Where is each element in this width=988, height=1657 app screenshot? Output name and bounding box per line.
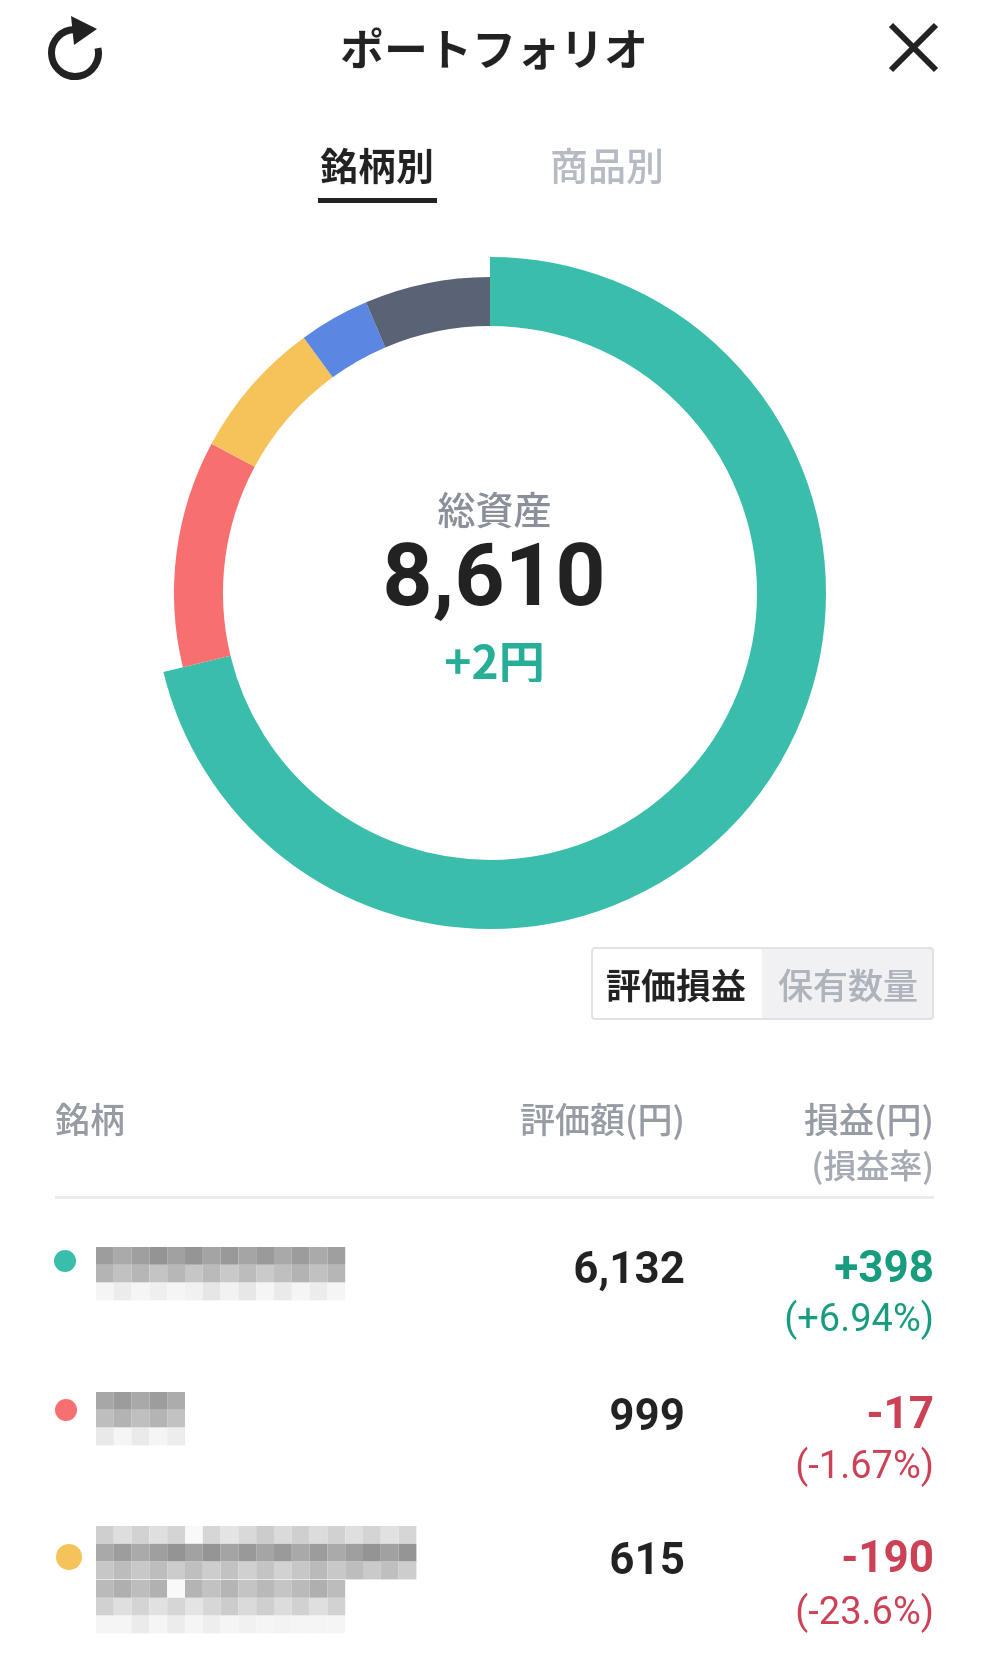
staticText: -190 <box>841 1531 934 1581</box>
staticText: ポートフォリオ <box>340 15 648 79</box>
button[interactable] <box>0 1220 988 1350</box>
staticText: 銘柄 <box>55 1092 126 1142</box>
staticText: (損益率) <box>811 1140 934 1188</box>
staticText: 総資産 <box>437 480 552 532</box>
staticText: (-1.67%) <box>795 1443 934 1487</box>
staticText: 8,610 <box>382 523 606 623</box>
button[interactable] <box>876 12 950 84</box>
staticText: 6,132 <box>573 1242 685 1292</box>
button[interactable]: 商品別 <box>530 122 685 206</box>
staticText: 銘柄別 <box>320 136 435 191</box>
staticText: 評価損益 <box>606 958 747 1009</box>
button[interactable]: 保有数量 <box>762 947 934 1020</box>
staticText: 保有数量 <box>778 958 919 1009</box>
staticText: (+6.94%) <box>784 1296 934 1340</box>
button[interactable]: 銘柄別 <box>300 122 455 206</box>
staticText: 商品別 <box>550 136 665 191</box>
staticText: 999 <box>609 1389 685 1439</box>
staticText: 評価額(円) <box>520 1092 685 1142</box>
staticText: 損益(円) <box>804 1092 934 1142</box>
button[interactable] <box>0 1510 988 1657</box>
button[interactable] <box>0 1368 988 1498</box>
staticText: +2円 <box>444 626 545 682</box>
button[interactable]: 評価損益 <box>591 947 762 1020</box>
button[interactable] <box>40 15 110 87</box>
staticText: -17 <box>866 1387 934 1437</box>
staticText: (-23.6%) <box>795 1589 934 1633</box>
staticText: +398 <box>834 1241 934 1291</box>
staticText: 615 <box>609 1533 685 1583</box>
